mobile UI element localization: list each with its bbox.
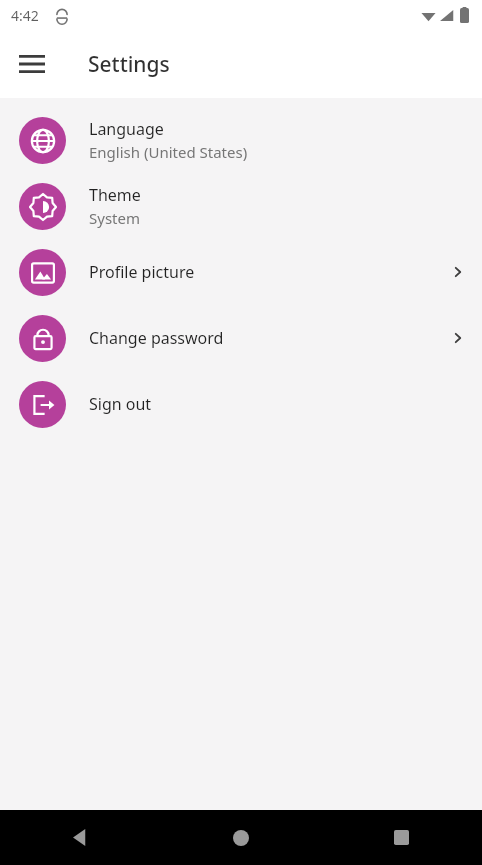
staticText: Language — [89, 118, 164, 140]
button[interactable]: Change password — [0, 305, 482, 371]
staticText: Theme — [89, 184, 141, 206]
button[interactable]: Back — [0, 810, 160, 865]
staticText: 4:42 — [11, 6, 39, 25]
staticText: Change password — [89, 327, 224, 349]
button[interactable]: Language — [0, 107, 482, 173]
button[interactable]: Profile picture — [0, 239, 482, 305]
staticText: System — [89, 208, 140, 228]
staticText: English (United States) — [89, 142, 248, 162]
button[interactable]: Home — [160, 810, 321, 865]
button[interactable]: Recent apps — [321, 810, 482, 865]
button[interactable]: Theme — [0, 173, 482, 239]
staticText: Profile picture — [89, 261, 195, 283]
staticText: Settings — [88, 50, 170, 79]
button[interactable]: Sign out — [0, 371, 482, 437]
button[interactable]: Open navigation menu — [8, 40, 56, 88]
staticText: Sign out — [89, 393, 152, 415]
